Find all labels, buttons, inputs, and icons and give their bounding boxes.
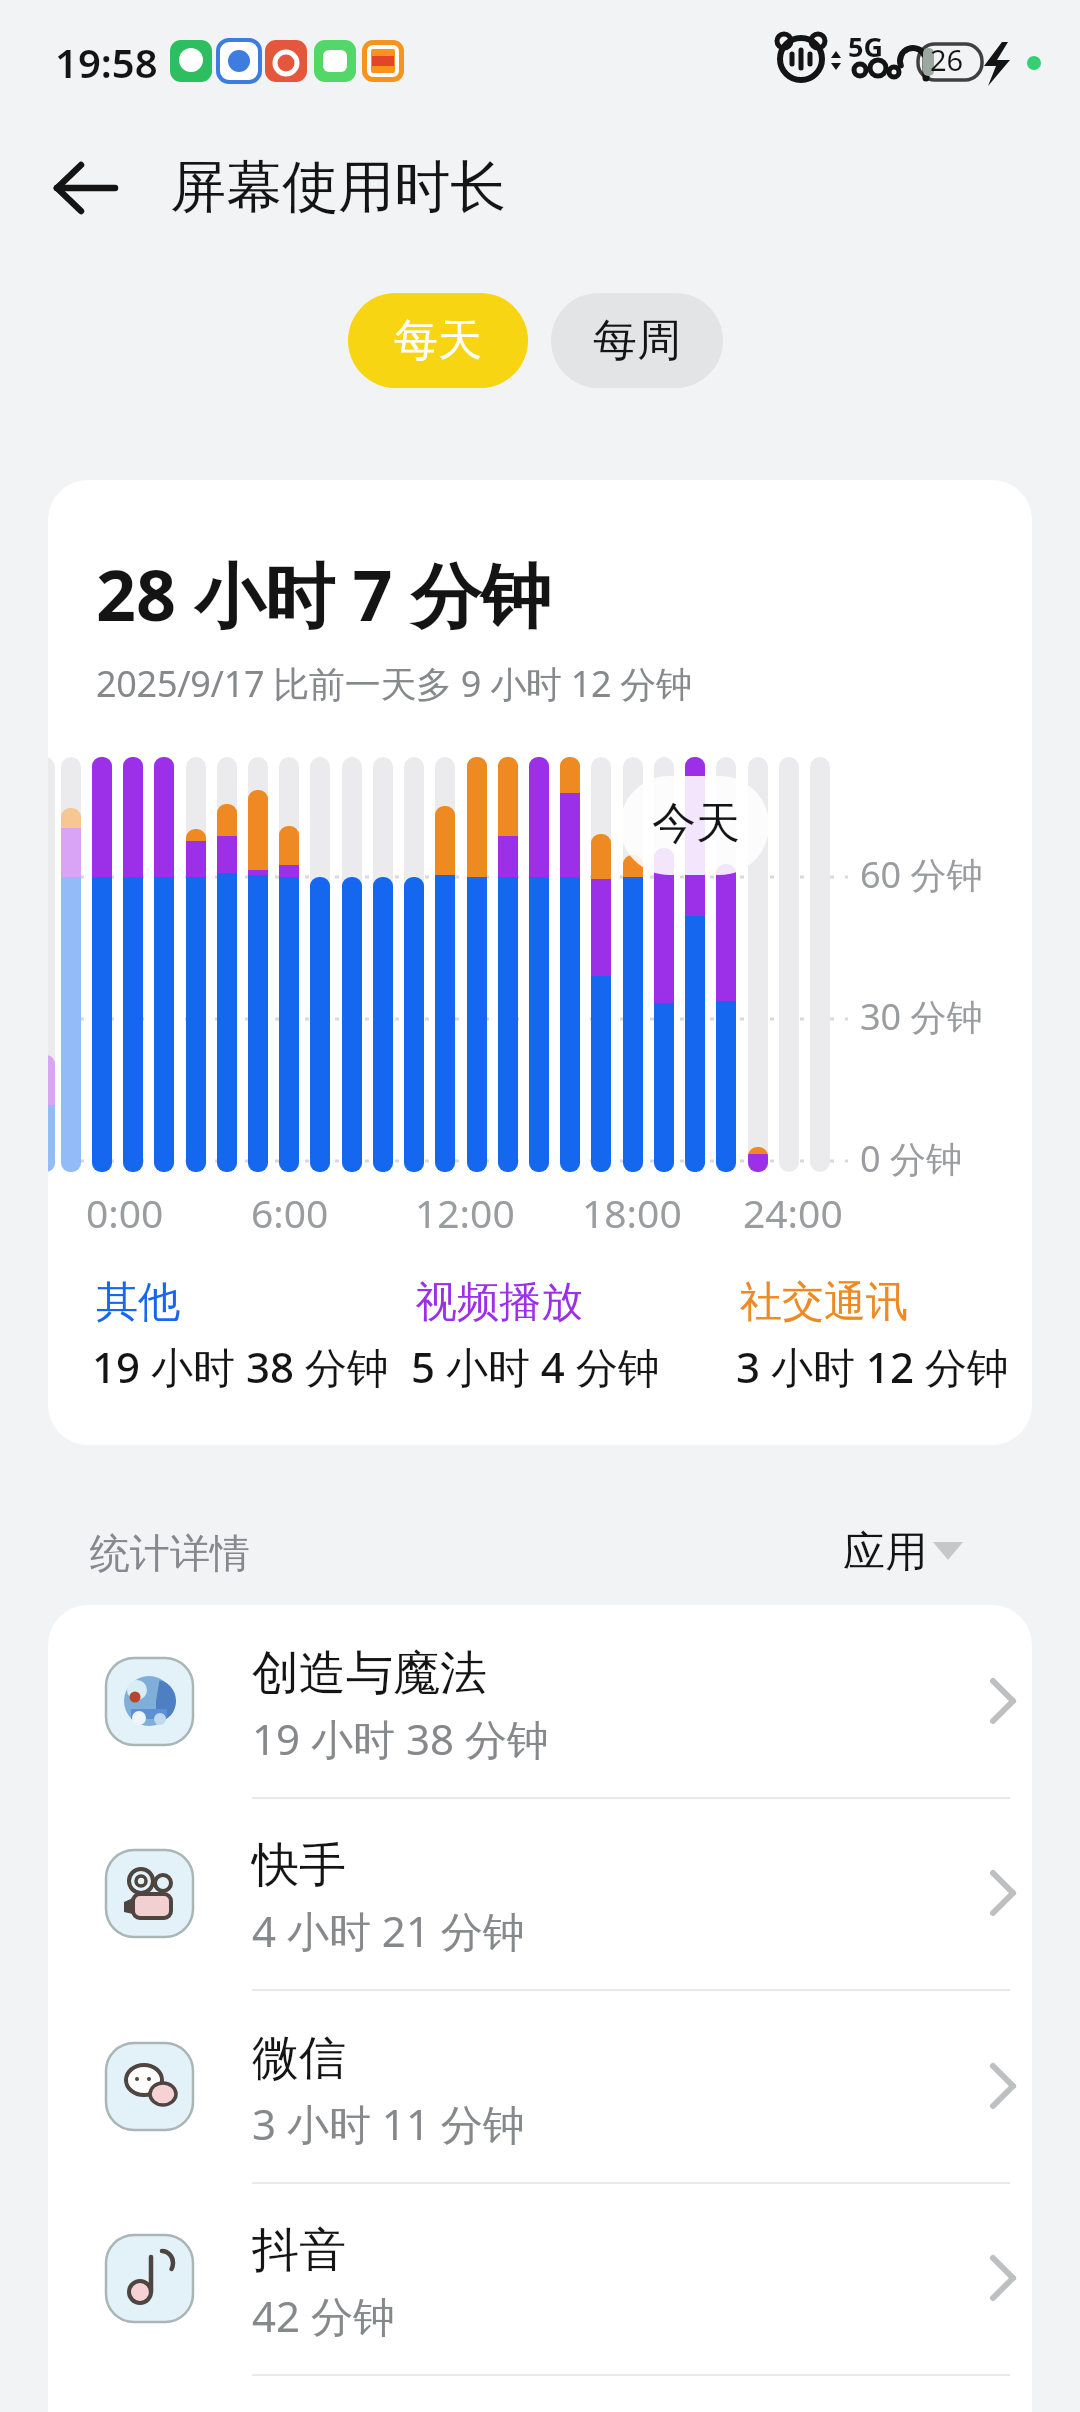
staticText: 5G bbox=[848, 28, 883, 65]
staticText: 18:00 bbox=[582, 1186, 682, 1239]
staticText: 微信 bbox=[252, 2029, 346, 2088]
staticText: 30 分钟 bbox=[860, 992, 983, 1041]
staticText: 3 小时 11 分钟 bbox=[252, 2095, 525, 2152]
staticText: 60 分钟 bbox=[860, 850, 983, 899]
staticText: 创造与魔法 bbox=[252, 1644, 487, 1703]
staticText: 4 小时 21 分钟 bbox=[252, 1902, 525, 1959]
staticText: 视频播放 bbox=[415, 1276, 583, 1329]
staticText: 快手 bbox=[252, 1836, 346, 1895]
button[interactable]: 应用 bbox=[820, 1520, 980, 1580]
staticText: 每天 bbox=[394, 313, 482, 368]
staticText: 12:00 bbox=[415, 1186, 515, 1239]
staticText: 3 小时 12 分钟 bbox=[736, 1338, 1009, 1395]
button[interactable]: 抖音 bbox=[48, 2205, 1032, 2395]
button[interactable]: 微信 bbox=[48, 2013, 1032, 2203]
staticText: 0:00 bbox=[86, 1186, 164, 1239]
staticText: 屏幕使用时长 bbox=[170, 152, 506, 223]
staticText: 24:00 bbox=[743, 1186, 843, 1239]
button[interactable]: 每天 bbox=[348, 293, 528, 388]
staticText: 6:00 bbox=[251, 1186, 329, 1239]
staticText: 每周 bbox=[593, 313, 681, 368]
staticText: 19 小时 38 分钟 bbox=[252, 1710, 549, 1767]
staticText: 应用 bbox=[843, 1526, 927, 1579]
staticText: 28 小时 7 分钟 bbox=[96, 546, 551, 642]
staticText: 2025/9/17 比前一天多 9 小时 12 分钟 bbox=[96, 659, 692, 708]
staticText: 抖音 bbox=[252, 2221, 346, 2280]
staticText: 0 分钟 bbox=[860, 1134, 962, 1183]
button[interactable]: 每周 bbox=[551, 293, 723, 388]
staticText: 42 分钟 bbox=[252, 2287, 395, 2344]
button[interactable]: 快手 bbox=[48, 1820, 1032, 2010]
staticText: 社交通讯 bbox=[740, 1276, 908, 1329]
staticText: 5 小时 4 分钟 bbox=[411, 1338, 660, 1395]
staticText: 19:58 bbox=[55, 35, 158, 89]
staticText: 其他 bbox=[96, 1276, 180, 1329]
staticText: 统计详情 bbox=[90, 1528, 250, 1578]
staticText: 今天 bbox=[652, 796, 740, 851]
staticText: 19 小时 38 分钟 bbox=[92, 1338, 389, 1395]
button[interactable]: 创造与魔法 bbox=[48, 1628, 1032, 1818]
button[interactable] bbox=[55, 160, 119, 216]
staticText: 26 bbox=[930, 40, 964, 79]
